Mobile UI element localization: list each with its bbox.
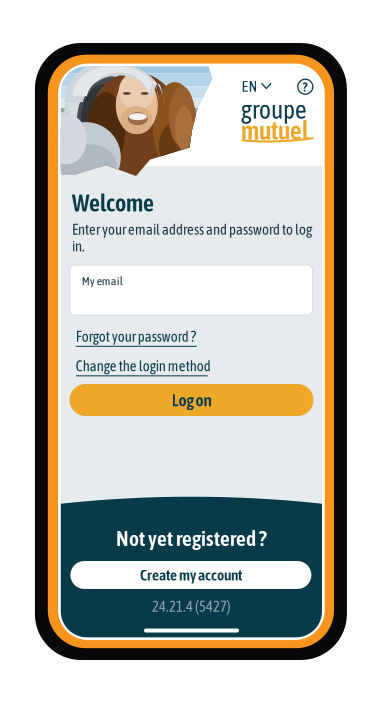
staticText: Log on — [171, 390, 211, 410]
button[interactable]: Help — [297, 79, 313, 95]
staticText: Enter your email address and password to… — [72, 221, 312, 255]
staticText: mutuel — [241, 116, 309, 145]
staticText: Create my account — [140, 566, 242, 584]
staticText: Not yet registered ? — [116, 526, 267, 550]
staticText: groupe — [241, 95, 307, 124]
staticText: EN — [241, 77, 257, 95]
button[interactable]: EN — [241, 77, 271, 95]
button[interactable]: Change the login method — [76, 357, 211, 376]
staticText: Welcome — [72, 189, 154, 216]
button[interactable]: Forgot your password ? — [76, 328, 197, 347]
button[interactable]: Log on — [69, 384, 313, 416]
staticText: Change the login method — [76, 357, 211, 374]
button[interactable]: Create my account — [70, 561, 311, 589]
staticText: ? — [303, 79, 308, 94]
staticText: Forgot your password ? — [76, 328, 196, 345]
staticText: My email — [82, 274, 123, 288]
staticText: 24.21.4 (5427) — [152, 598, 231, 615]
